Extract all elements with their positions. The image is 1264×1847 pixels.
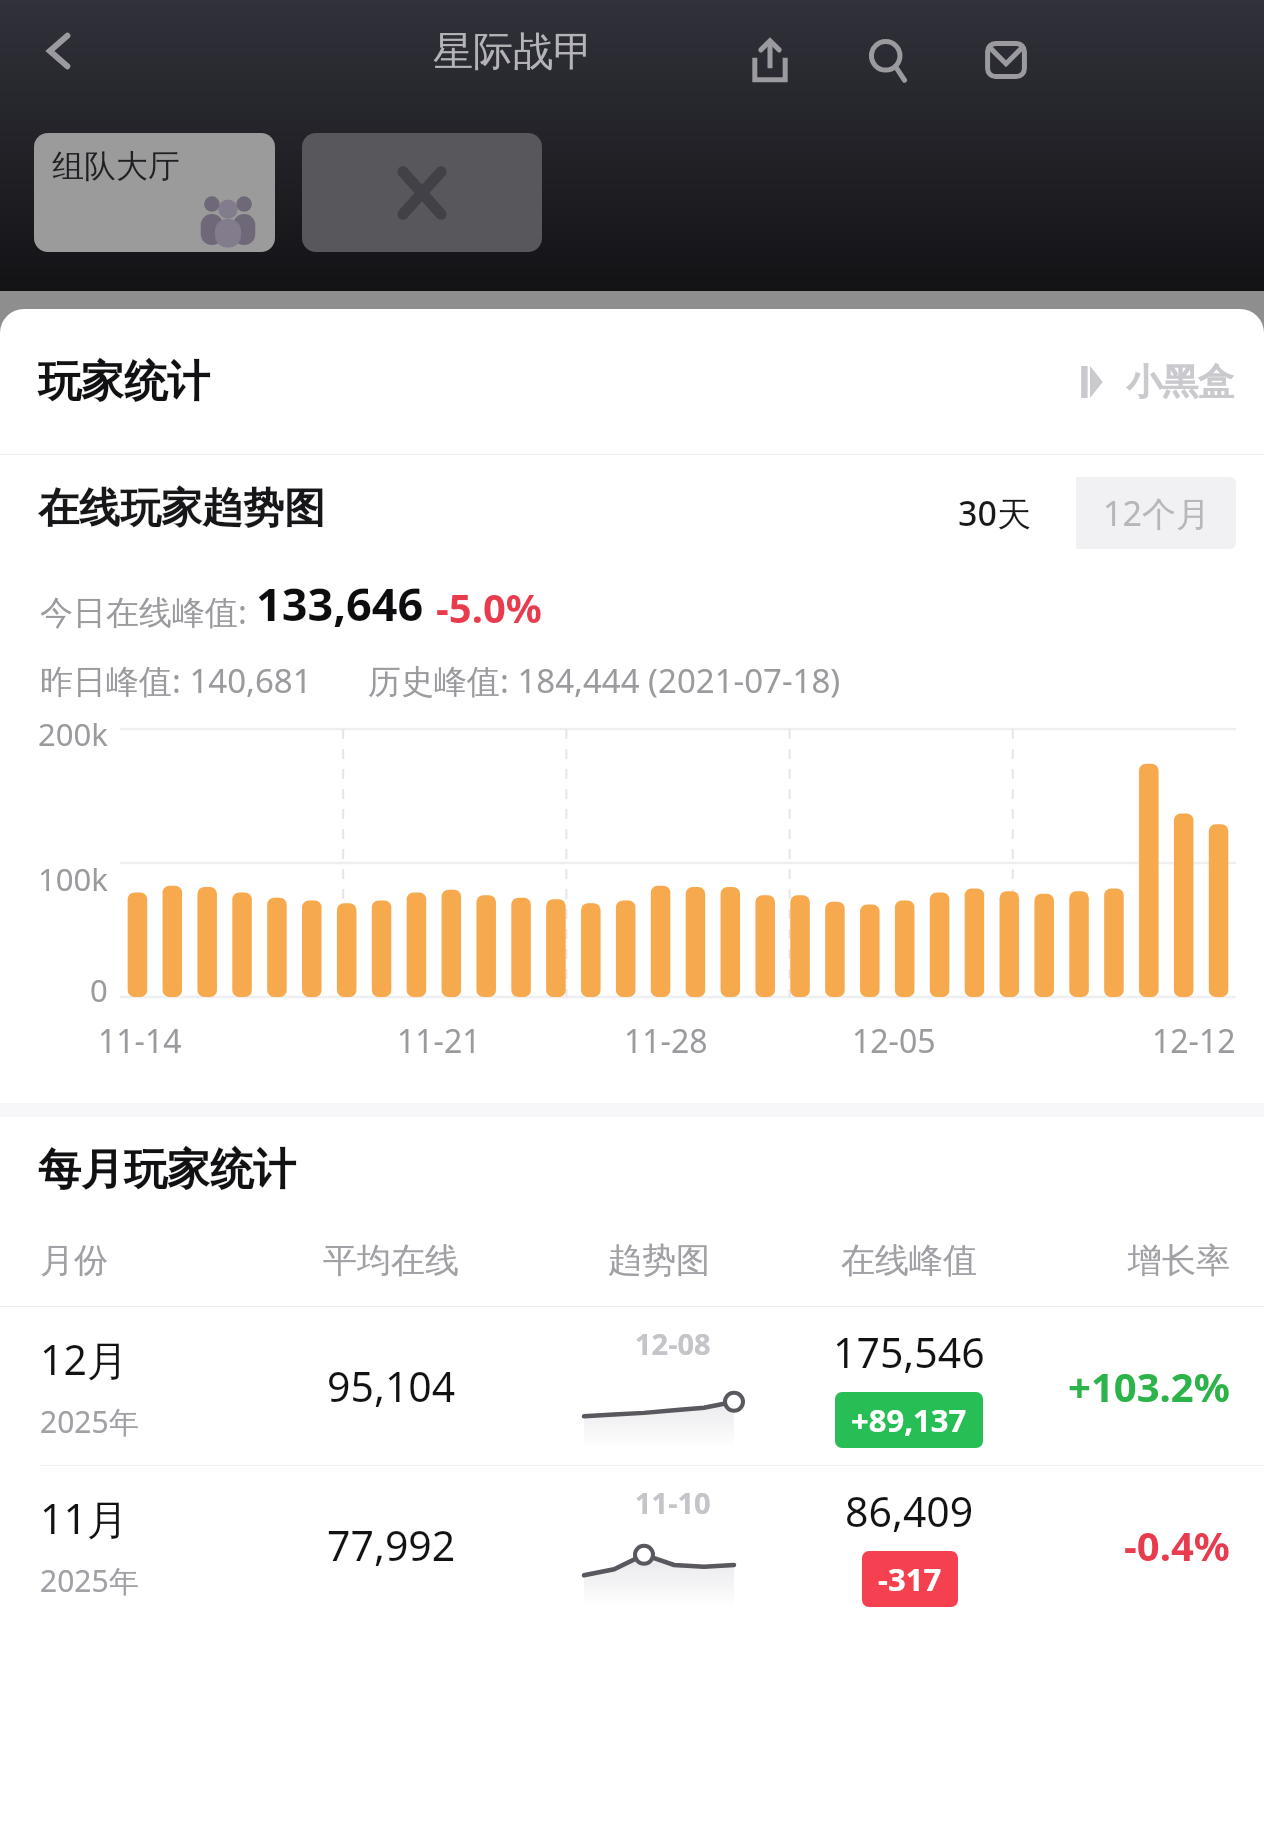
staticText: 175,546 xyxy=(833,1324,985,1380)
staticText: 在线峰值 xyxy=(841,1239,977,1282)
staticText: 2025年 xyxy=(40,1560,139,1601)
staticText: 12-08 xyxy=(635,1324,711,1363)
staticText: 月份 xyxy=(40,1239,108,1282)
staticText: 平均在线 xyxy=(323,1239,459,1282)
staticText: -5.0% xyxy=(436,580,542,634)
button[interactable]: 组队大厅 xyxy=(34,133,275,252)
staticText: 86,409 xyxy=(845,1483,974,1539)
staticText: 每月玩家统计 xyxy=(38,1143,296,1197)
staticText: 组队大厅 xyxy=(52,146,180,186)
staticText: 100k xyxy=(38,858,108,900)
staticText: 11月 xyxy=(40,1490,128,1546)
staticText: 增长率 xyxy=(1128,1239,1230,1282)
button[interactable]: Share xyxy=(722,12,818,108)
staticText: 12月 xyxy=(40,1331,128,1387)
staticText: 在线玩家趋势图 xyxy=(38,483,325,535)
staticText: +103.2% xyxy=(1068,1359,1230,1413)
staticText: 77,992 xyxy=(327,1517,456,1573)
staticText: 2025年 xyxy=(40,1401,139,1442)
staticText: 200k xyxy=(38,713,108,755)
staticText: +89,137 xyxy=(851,1399,967,1441)
button[interactable]: Search xyxy=(840,12,936,108)
button[interactable]: 12个月 xyxy=(1076,477,1236,549)
staticText: 星际战甲 xyxy=(433,26,593,76)
staticText: 趋势图 xyxy=(608,1239,710,1282)
staticText: -317 xyxy=(878,1558,942,1600)
button[interactable]: Messages xyxy=(958,12,1054,108)
staticText: 30天 xyxy=(958,490,1031,536)
button[interactable]: Back xyxy=(20,12,98,90)
staticText: 11-21 xyxy=(397,1019,481,1063)
staticText: 0 xyxy=(90,969,108,1011)
staticText: 小黑盒 xyxy=(1126,359,1234,404)
staticText: 11-10 xyxy=(635,1483,711,1522)
staticText: 历史峰值: 184,444 (2021-07-18) xyxy=(368,658,841,703)
staticText: 12个月 xyxy=(1103,490,1210,536)
staticText: 玩家统计 xyxy=(38,355,210,409)
staticText: 今日在线峰值: xyxy=(40,589,256,634)
button[interactable]: 12月 xyxy=(0,1307,1264,1465)
staticText: 11-28 xyxy=(624,1019,708,1063)
staticText: 12-05 xyxy=(852,1019,936,1063)
button[interactable]: 30天 xyxy=(912,477,1076,549)
button[interactable]: 11月 xyxy=(0,1466,1264,1624)
staticText: 12-12 xyxy=(1152,1019,1236,1063)
staticText: 133,646 xyxy=(256,573,424,634)
staticText: 11-14 xyxy=(98,1019,182,1063)
staticText: 95,104 xyxy=(327,1358,456,1414)
staticText: 昨日峰值: 140,681 xyxy=(40,658,312,703)
staticText: -0.4% xyxy=(1124,1518,1230,1572)
button[interactable]: Tools xyxy=(302,133,542,252)
